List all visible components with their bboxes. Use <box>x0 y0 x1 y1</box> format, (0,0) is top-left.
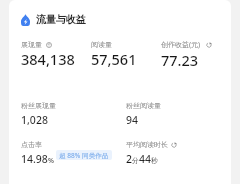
staticText: 粉丝展现量 <box>21 101 56 110</box>
staticText: 粉丝阅读量 <box>126 101 161 110</box>
staticText: 384,138 <box>21 49 75 69</box>
staticText: 1,028 <box>21 113 48 127</box>
staticText: 展现量 <box>21 40 42 49</box>
staticText: 流量与收益 <box>36 13 86 26</box>
staticText: 94 <box>126 113 139 127</box>
staticText: 77.23 <box>161 50 199 70</box>
button[interactable]: 粉丝阅读量 <box>126 101 231 127</box>
staticText: 14.98% <box>21 152 54 166</box>
button[interactable]: 平均阅读时长 <box>126 140 231 166</box>
other: 刷新平均阅读时长 <box>171 142 177 148</box>
other: 展现量说明 <box>46 42 52 48</box>
button[interactable]: 阅读量 <box>91 40 161 69</box>
staticText: 2分44秒 <box>126 152 159 166</box>
staticText: 超 88% 同类作品 <box>59 151 109 160</box>
other: 刷新创作收益 <box>206 42 212 48</box>
button[interactable]: 点击率 <box>21 140 42 149</box>
button[interactable]: 创作收益(元) <box>161 40 231 70</box>
button[interactable]: 展现量 <box>21 40 91 69</box>
button[interactable]: 超 88% 同类作品 <box>56 150 112 160</box>
staticText: 平均阅读时长 <box>126 140 168 149</box>
staticText: 阅读量 <box>91 40 112 49</box>
staticText: 创作收益(元) <box>161 40 201 50</box>
button[interactable]: 流量与收益 <box>21 13 86 26</box>
staticText: 57,561 <box>91 49 137 69</box>
button[interactable]: 粉丝展现量 <box>21 101 126 127</box>
